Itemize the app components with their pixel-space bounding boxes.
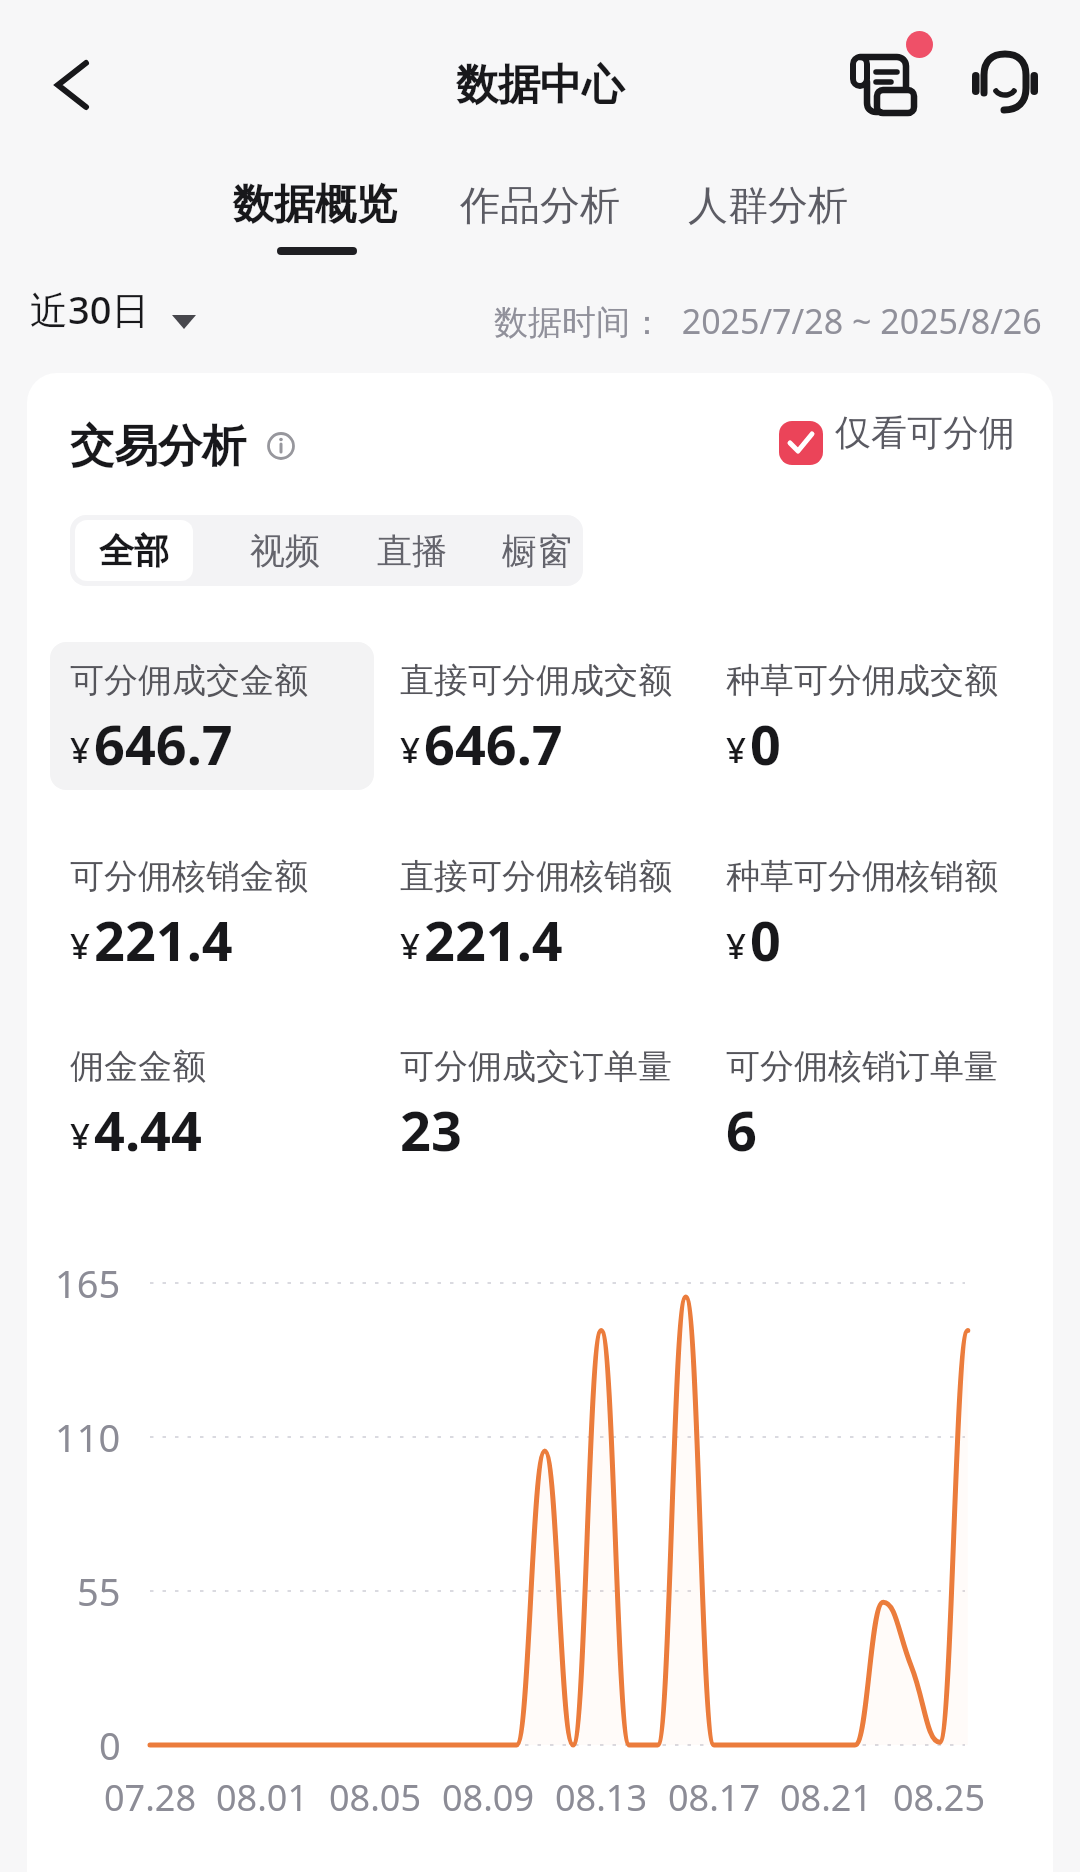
staticText: 佣金金额: [70, 1045, 206, 1088]
staticText: 165: [55, 1257, 121, 1309]
staticText: 4.44: [94, 1093, 202, 1167]
staticText: ¥: [70, 726, 91, 774]
staticText: ¥: [70, 922, 91, 970]
staticText: 种草可分佣核销额: [726, 855, 998, 898]
button[interactable]: [850, 52, 916, 118]
staticText: 视频: [250, 529, 320, 573]
staticText: 221.4: [94, 903, 233, 977]
staticText: 数据时间： 2025/7/28 ~ 2025/8/26: [494, 298, 1042, 344]
staticText: 人群分析: [688, 180, 848, 230]
staticText: 08.01: [216, 1773, 309, 1822]
staticText: 08.09: [442, 1773, 535, 1822]
staticText: 可分佣成交订单量: [400, 1045, 672, 1088]
staticText: 交易分析: [70, 419, 246, 474]
staticText: 直接可分佣核销额: [400, 855, 672, 898]
staticText: 仅看可分佣: [835, 410, 1015, 455]
staticText: 6: [726, 1093, 757, 1167]
staticText: 0: [750, 707, 781, 781]
staticText: 08.17: [668, 1773, 761, 1822]
staticText: ¥: [726, 922, 747, 970]
staticText: ¥: [400, 726, 421, 774]
staticText: 08.13: [555, 1773, 648, 1822]
staticText: 橱窗: [502, 529, 572, 573]
staticText: 直播: [377, 529, 447, 573]
staticText: ¥: [726, 726, 747, 774]
staticText: 数据中心: [456, 59, 624, 112]
button[interactable]: 仅看可分佣: [777, 418, 1039, 468]
staticText: 08.25: [893, 1773, 986, 1822]
staticText: 可分佣核销订单量: [726, 1045, 998, 1088]
staticText: 646.7: [424, 707, 563, 781]
button[interactable]: 橱窗: [483, 515, 583, 586]
staticText: 种草可分佣成交额: [726, 659, 998, 702]
button[interactable]: 作品分析: [460, 180, 620, 230]
staticText: 全部: [99, 529, 169, 573]
staticText: 08.05: [329, 1773, 422, 1822]
button[interactable]: 全部: [75, 520, 193, 581]
staticText: 直接可分佣成交额: [400, 659, 672, 702]
staticText: ¥: [70, 1112, 91, 1160]
staticText: 55: [77, 1565, 121, 1617]
staticText: 110: [55, 1411, 121, 1463]
staticText: 近30日: [30, 283, 150, 335]
button[interactable]: 视频: [231, 515, 339, 586]
staticText: 数据概览: [233, 179, 397, 231]
staticText: 08.21: [780, 1773, 873, 1822]
staticText: 0: [99, 1719, 121, 1771]
button[interactable]: 近30日: [30, 295, 210, 347]
button[interactable]: [970, 50, 1040, 120]
staticText: 646.7: [94, 707, 233, 781]
staticText: 0: [750, 903, 781, 977]
button[interactable]: 人群分析: [688, 180, 848, 230]
staticText: 作品分析: [460, 180, 620, 230]
button[interactable]: 数据概览: [233, 179, 397, 231]
staticText: 07.28: [104, 1773, 197, 1822]
staticText: ¥: [400, 922, 421, 970]
staticText: 可分佣成交金额: [70, 659, 308, 702]
staticText: 可分佣核销金额: [70, 855, 308, 898]
button[interactable]: [40, 55, 100, 115]
staticText: 221.4: [424, 903, 563, 977]
staticText: 23: [400, 1093, 462, 1167]
button[interactable]: 直播: [358, 515, 466, 586]
